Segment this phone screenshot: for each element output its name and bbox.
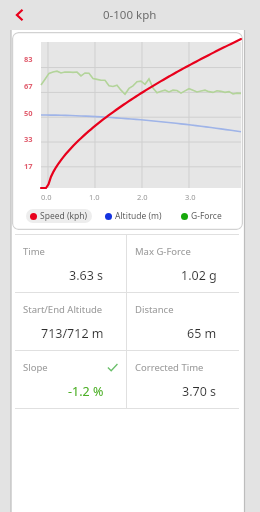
- staticText: Speed (kph): [40, 210, 88, 222]
- staticText: Start/End Altitude: [23, 303, 103, 316]
- staticText: 2.0: [137, 192, 148, 202]
- staticText: 65 m: [187, 325, 217, 342]
- staticText: Time: [23, 245, 45, 258]
- staticText: 67: [24, 81, 33, 91]
- button[interactable]: Corrected Time: [127, 351, 239, 408]
- staticText: Max G-Force: [135, 245, 191, 258]
- button[interactable]: Slope: [15, 351, 126, 408]
- staticText: 1.02 g: [181, 267, 217, 284]
- staticText: 3.63 s: [69, 267, 104, 284]
- staticText: 0-100 kph: [103, 7, 157, 23]
- staticText: 33: [24, 134, 33, 144]
- button[interactable]: Back: [6, 1, 34, 29]
- staticText: 17: [24, 161, 33, 171]
- button[interactable]: Start/End Altitude: [15, 293, 126, 350]
- staticText: 1.0: [89, 192, 100, 202]
- button[interactable]: G-Force: [177, 209, 226, 223]
- staticText: -1.2 %: [68, 383, 104, 400]
- button[interactable]: Speed (kph): [26, 209, 92, 223]
- staticText: 0.0: [41, 192, 52, 202]
- button[interactable]: Max G-Force: [127, 235, 239, 292]
- staticText: G-Force: [191, 210, 222, 222]
- staticText: 83: [24, 54, 33, 64]
- staticText: 3.0: [185, 192, 196, 202]
- button[interactable]: Altitude (m): [101, 209, 166, 223]
- button[interactable]: Distance: [127, 293, 239, 350]
- staticText: Corrected Time: [135, 361, 204, 374]
- staticText: Altitude (m): [115, 210, 162, 222]
- staticText: 50: [24, 108, 33, 118]
- button[interactable]: Time: [15, 235, 126, 292]
- staticText: Distance: [135, 303, 174, 316]
- staticText: 3.70 s: [182, 383, 217, 400]
- staticText: 713/712 m: [41, 325, 104, 342]
- staticText: Slope: [23, 361, 48, 374]
